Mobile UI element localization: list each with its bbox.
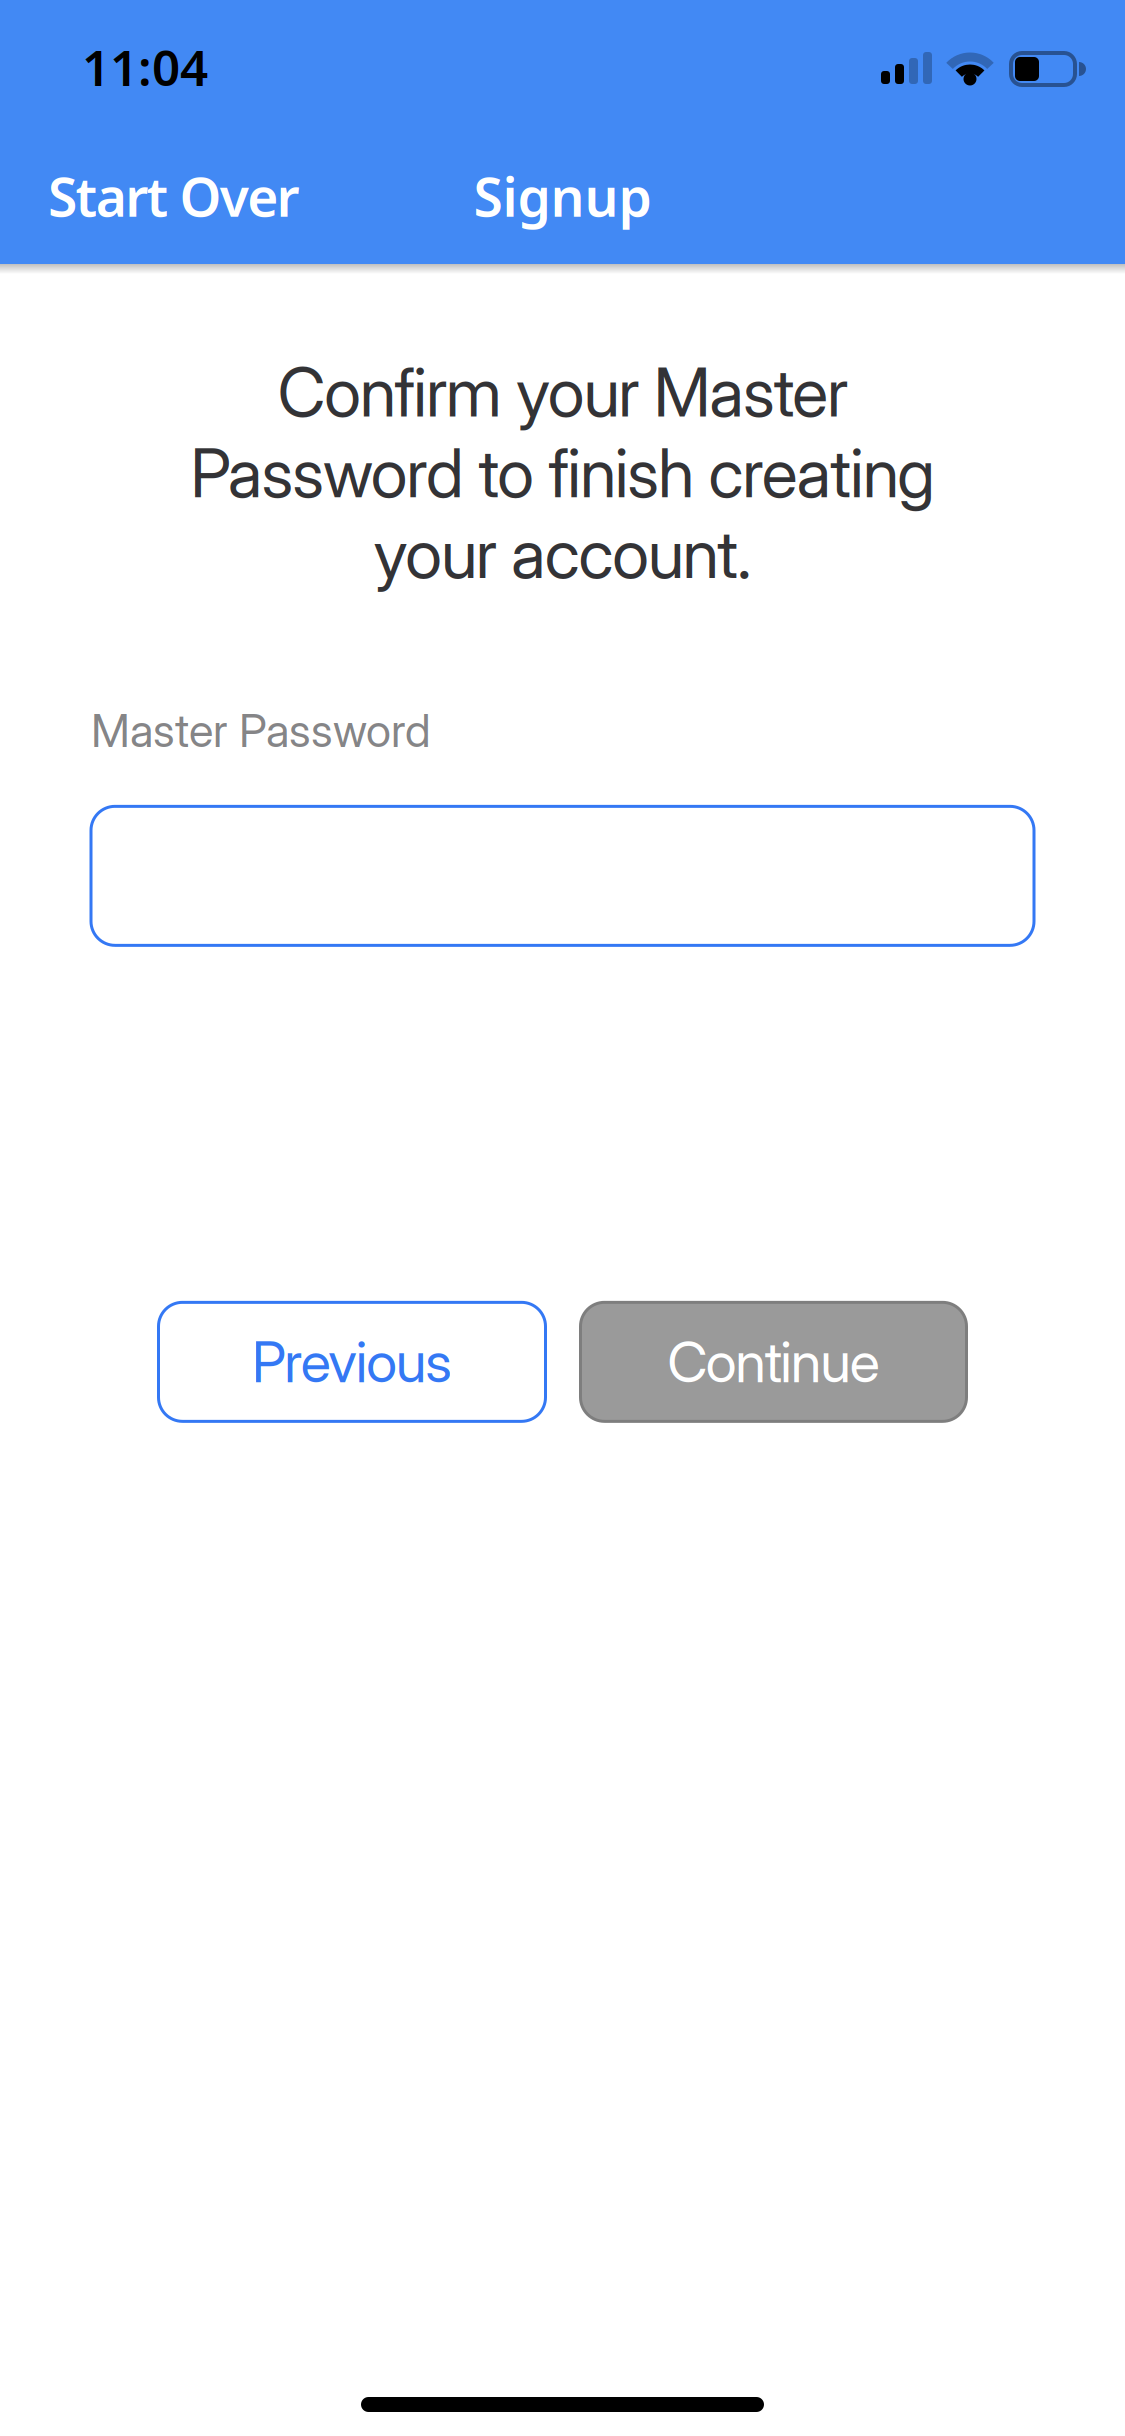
button[interactable]: Signup — [473, 161, 651, 231]
staticText: Start Over — [48, 161, 300, 231]
staticText: Confirm your Master Password to finish c… — [190, 352, 935, 594]
staticText: Continue — [667, 1328, 880, 1396]
staticText: Signup — [473, 161, 651, 231]
button[interactable]: Continue — [579, 1301, 968, 1423]
button[interactable]: Previous — [157, 1301, 547, 1423]
staticText: Master Password — [91, 703, 431, 758]
staticText: Previous — [252, 1328, 452, 1396]
button[interactable]: Master Password — [89, 805, 1035, 947]
button[interactable]: Start Over — [0, 161, 300, 231]
staticText: 11:04 — [82, 34, 208, 99]
